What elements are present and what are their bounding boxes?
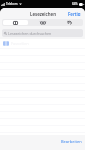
button[interactable]: Fertig xyxy=(64,8,85,18)
button[interactable]: Verlauf xyxy=(57,20,82,25)
other: Verlauf xyxy=(67,20,72,25)
staticText: Fertig xyxy=(68,11,81,16)
button[interactable]: Lesezeichen durchsuchen xyxy=(2,29,83,37)
button[interactable]: Lesezeichen xyxy=(3,20,28,25)
other: Leseliste xyxy=(40,21,46,24)
button[interactable]: Bearbeiten xyxy=(58,135,85,146)
staticText: 84% xyxy=(72,2,78,6)
staticText: Telekom xyxy=(6,2,18,6)
button[interactable]: Favoriten xyxy=(0,39,85,48)
staticText: Favoriten xyxy=(11,41,29,46)
staticText: Lesezeichen durchsuchen xyxy=(8,31,52,36)
button[interactable]: Leseliste xyxy=(30,20,55,25)
staticText: Bearbeiten xyxy=(61,139,82,144)
staticText: Lesezeichen xyxy=(30,11,56,17)
other: Lesezeichen xyxy=(13,21,18,25)
